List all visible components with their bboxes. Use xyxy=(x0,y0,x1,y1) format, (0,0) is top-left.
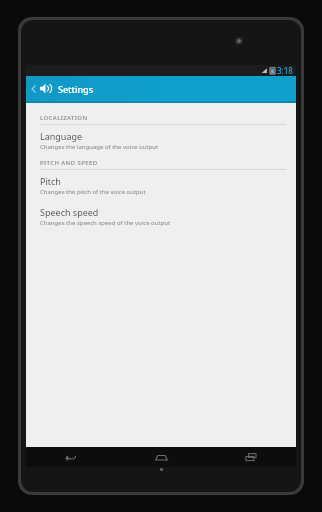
staticText: 3:18 xyxy=(277,65,293,76)
button[interactable]: Pitch xyxy=(26,170,296,201)
other: Navigate up xyxy=(31,84,36,94)
other: App icon xyxy=(38,81,53,96)
button[interactable]: Language xyxy=(26,125,296,156)
button[interactable]: Back xyxy=(56,447,86,467)
button[interactable]: Navigate up xyxy=(26,76,296,101)
staticText: Changes the language of the voice output xyxy=(40,143,159,151)
button[interactable]: Home xyxy=(146,447,176,467)
staticText: Speech speed xyxy=(40,206,99,218)
staticText: PITCH AND SPEED xyxy=(40,159,98,167)
button[interactable]: Speech speed xyxy=(26,201,296,232)
staticText: Changes the pitch of the voice output xyxy=(40,188,146,196)
button[interactable]: Recent apps xyxy=(236,447,266,467)
staticText: LOCALIZATION xyxy=(40,114,88,122)
staticText: Pitch xyxy=(40,175,61,187)
staticText: Changes the speech speed of the voice ou… xyxy=(40,219,171,227)
staticText: Settings xyxy=(58,83,94,95)
staticText: Language xyxy=(40,130,83,142)
